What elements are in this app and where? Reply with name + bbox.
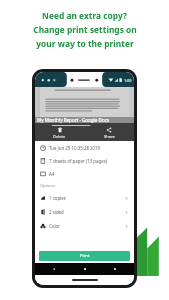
- staticText: Color: [49, 223, 61, 229]
- button[interactable]: Back: [49, 264, 59, 274]
- button[interactable]: Home: [80, 264, 90, 274]
- staticText: Print: [80, 253, 90, 259]
- staticText: 2 sided: [49, 209, 64, 215]
- staticText: Change print settings on: [33, 24, 137, 35]
- staticText: Share: [104, 134, 115, 139]
- staticText: your way to the printer: [36, 38, 134, 49]
- button[interactable]: A4: [35, 167, 134, 180]
- button[interactable]: Tue Jun 25 10:35:28 2019: [35, 141, 134, 154]
- button[interactable]: Print: [39, 251, 130, 261]
- staticText: Need an extra copy?: [42, 10, 127, 21]
- button[interactable]: 7 sheets of paper (13 pages): [35, 154, 134, 167]
- staticText: A4: [49, 171, 55, 177]
- staticText: 7 sheets of paper (13 pages): [49, 158, 108, 164]
- button[interactable]: Delete: [35, 127, 84, 141]
- staticText: Delete: [53, 134, 66, 139]
- staticText: Tue Jun 25 10:35:28 2019: [49, 145, 101, 151]
- button[interactable]: 2 sided: [35, 205, 134, 219]
- button[interactable]: Color: [35, 219, 134, 233]
- button[interactable]: Recent apps: [110, 264, 120, 274]
- button[interactable]: 1 copies: [35, 191, 134, 205]
- button[interactable]: Share: [84, 127, 134, 141]
- staticText: My Monthly Report - Google Docs: [37, 117, 110, 123]
- staticText: 1 copies: [49, 195, 66, 201]
- staticText: 1:00: [124, 78, 132, 83]
- staticText: Options: [40, 183, 55, 188]
